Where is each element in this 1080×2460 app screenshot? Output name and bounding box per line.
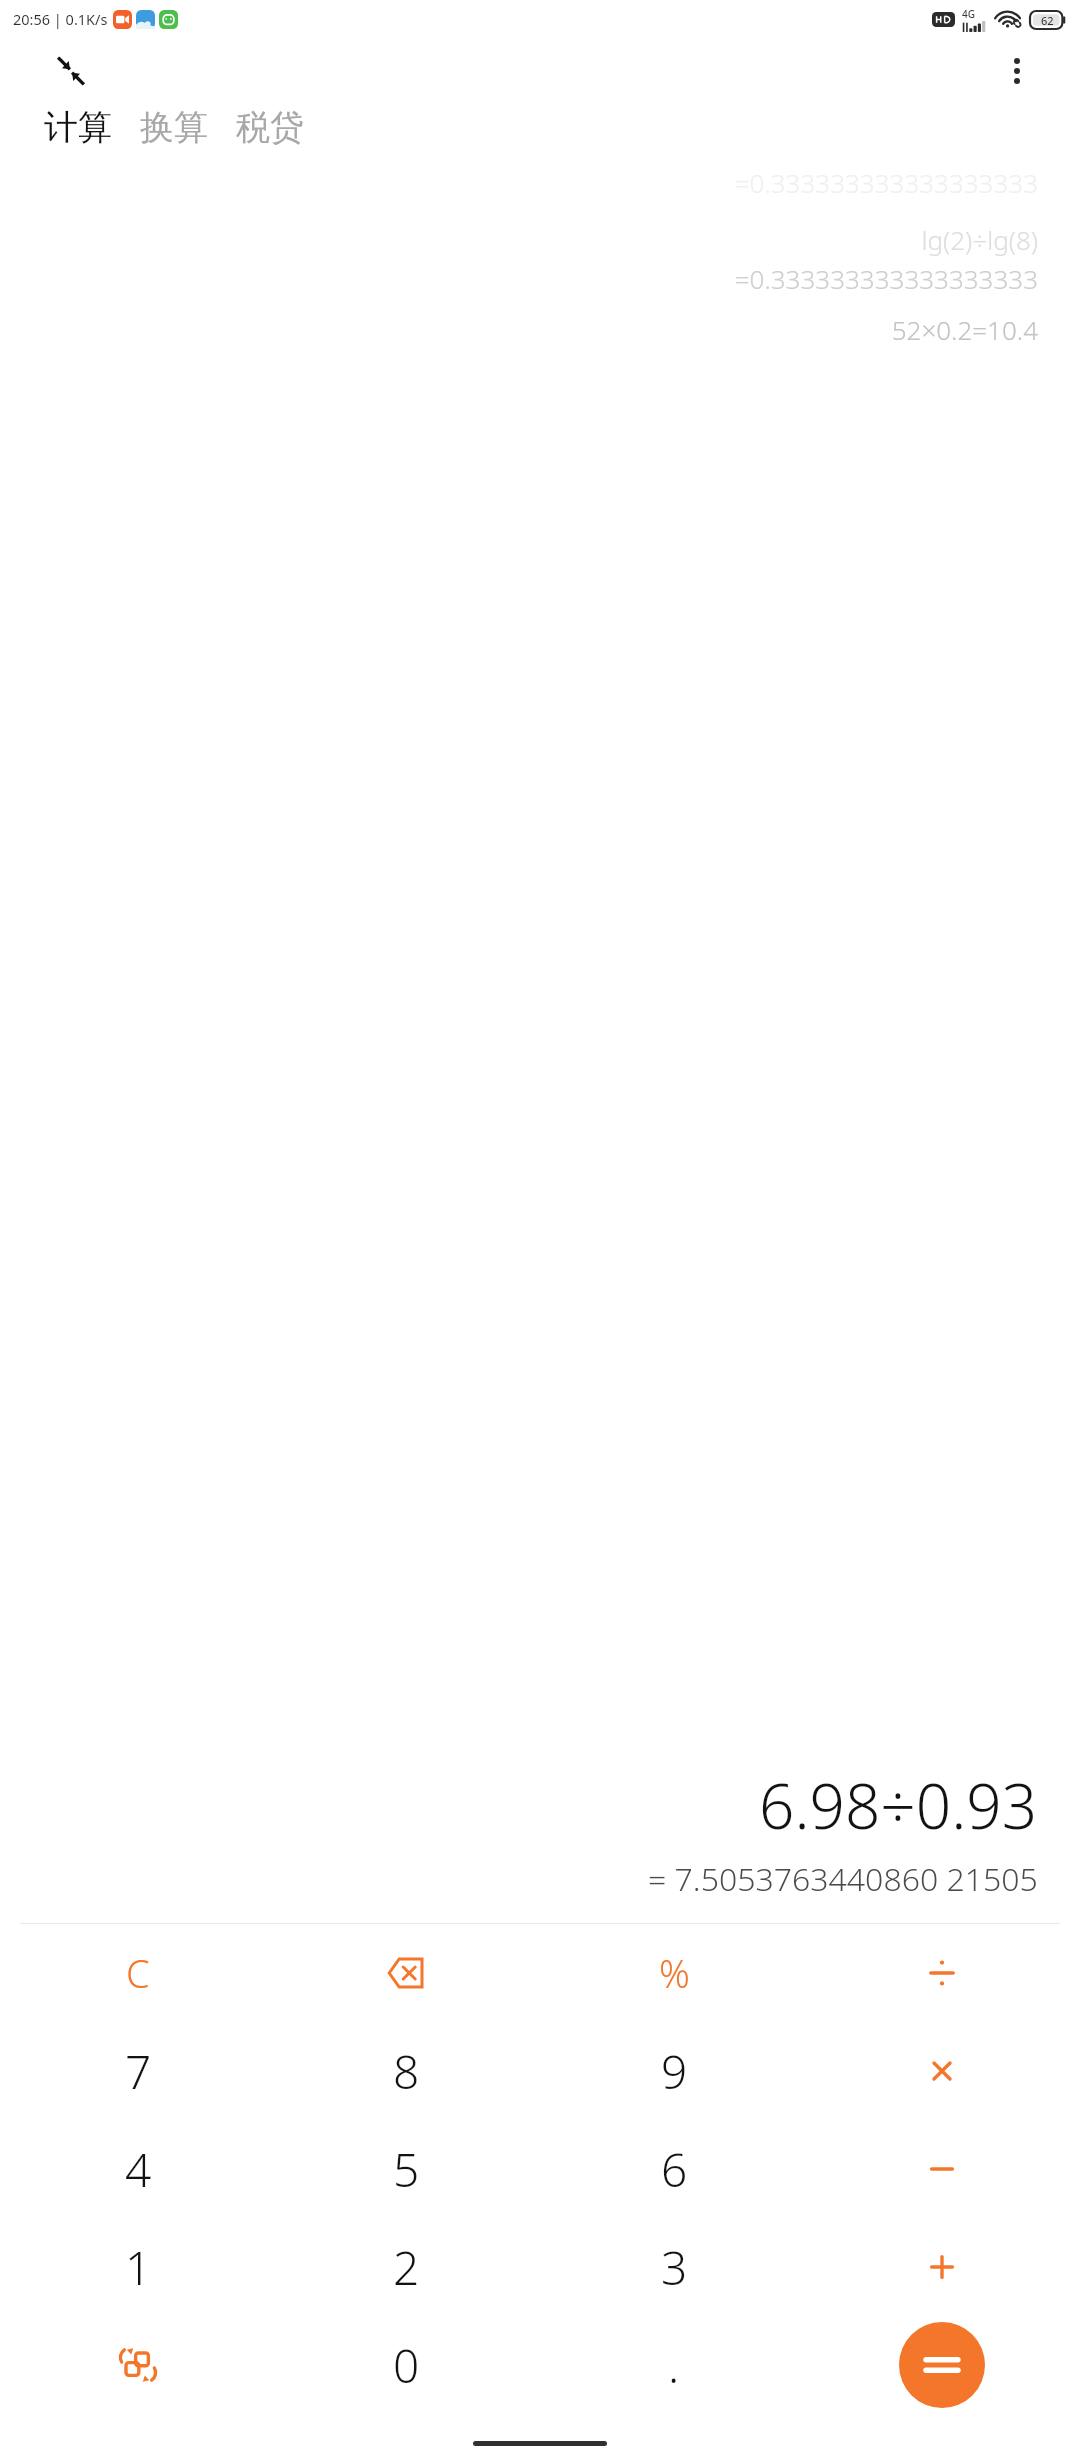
staticText: 4: [125, 2138, 152, 2201]
button[interactable]: Multiply: [896, 2025, 988, 2117]
button[interactable]: 1: [92, 2221, 184, 2313]
button[interactable]: 6: [628, 2123, 720, 2215]
staticText: C: [126, 1947, 150, 1999]
staticText: 6.98÷0.93: [759, 1763, 1038, 1847]
staticText: 62: [1041, 13, 1054, 28]
staticText: 换算: [140, 106, 208, 149]
staticText: 52×0.2=10.4: [891, 312, 1038, 347]
button[interactable]: lg(2)÷lg(8): [921, 222, 1038, 257]
button[interactable]: 9: [628, 2025, 720, 2117]
button[interactable]: Collapse: [48, 48, 94, 94]
staticText: 税贷: [236, 106, 304, 149]
staticText: 3: [661, 2236, 688, 2299]
staticText: 2: [393, 2236, 420, 2299]
button[interactable]: 7: [92, 2025, 184, 2117]
staticText: lg(2)÷lg(8): [921, 222, 1038, 257]
staticText: 5: [393, 2138, 420, 2201]
button[interactable]: 0: [360, 2319, 452, 2411]
button[interactable]: Divide: [896, 1927, 988, 2019]
button[interactable]: 换算: [140, 104, 208, 151]
staticText: %: [659, 1947, 690, 1999]
button[interactable]: .: [628, 2319, 720, 2411]
staticText: =0.333333333333333333: [734, 165, 1038, 200]
staticText: =0.333333333333333333: [734, 261, 1038, 296]
staticText: = 7.5053763440860 21505: [648, 1857, 1038, 1901]
button[interactable]: 4: [92, 2123, 184, 2215]
button[interactable]: Minus: [896, 2123, 988, 2215]
button[interactable]: =0.333333333333333333: [734, 261, 1038, 296]
staticText: 4G: [962, 7, 975, 21]
staticText: 8: [393, 2040, 420, 2103]
button[interactable]: =0.333333333333333333: [734, 165, 1038, 200]
button[interactable]: 税贷: [236, 104, 304, 151]
staticText: 20:56 | 0.1K/s: [13, 9, 108, 29]
button[interactable]: Unit conversion: [92, 2319, 184, 2411]
button[interactable]: Equals: [899, 2322, 985, 2408]
button[interactable]: Backspace: [360, 1927, 452, 2019]
button[interactable]: C: [92, 1927, 184, 2019]
button[interactable]: 8: [360, 2025, 452, 2117]
staticText: 7: [125, 2040, 152, 2103]
button[interactable]: More options: [994, 48, 1040, 94]
staticText: 计算: [44, 106, 112, 149]
button[interactable]: %: [628, 1927, 720, 2019]
button[interactable]: 3: [628, 2221, 720, 2313]
staticText: 1: [125, 2236, 152, 2299]
button[interactable]: 5: [360, 2123, 452, 2215]
staticText: .: [668, 2334, 680, 2397]
button[interactable]: 52×0.2=10.4: [891, 312, 1038, 347]
staticText: 0: [393, 2334, 420, 2397]
button[interactable]: 2: [360, 2221, 452, 2313]
staticText: 9: [661, 2040, 688, 2103]
staticText: 6: [661, 2138, 688, 2201]
button[interactable]: 计算: [44, 104, 112, 151]
button[interactable]: Plus: [896, 2221, 988, 2313]
